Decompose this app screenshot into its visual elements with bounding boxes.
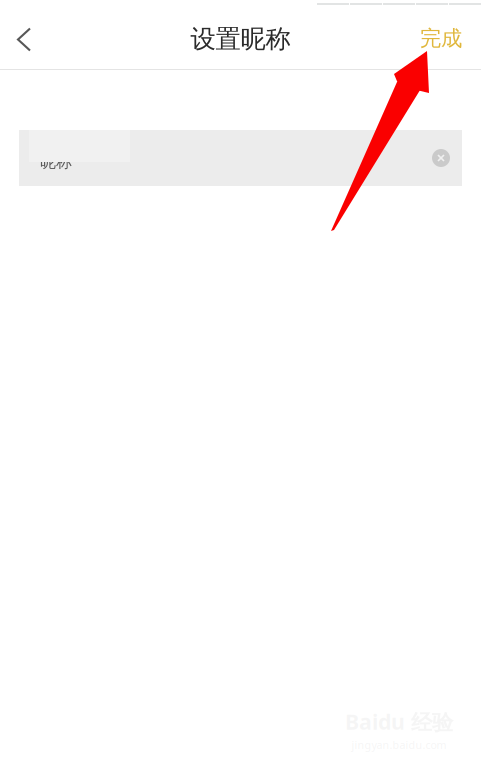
staticText: Baidu 经验: [345, 707, 453, 736]
staticText: 设置昵称: [190, 23, 290, 54]
button[interactable]: Clear text: [426, 143, 456, 173]
staticText: 完成: [420, 25, 462, 52]
button[interactable]: Back: [0, 16, 48, 60]
button[interactable]: 完成: [411, 16, 481, 60]
staticText: 昵称: [40, 152, 72, 172]
